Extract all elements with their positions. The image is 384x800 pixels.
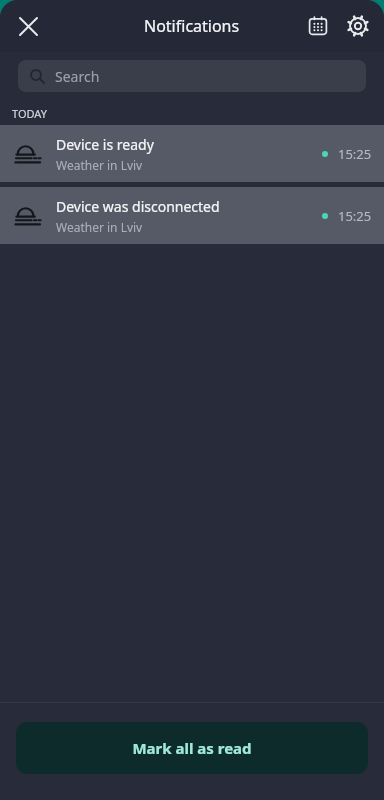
button[interactable]: Device is ready <box>0 125 384 182</box>
staticText: Weather in Lviv <box>56 219 143 235</box>
button[interactable]: Settings <box>338 6 378 46</box>
button[interactable]: Search <box>18 60 366 92</box>
staticText: TODAY <box>12 106 47 121</box>
staticText: Device is ready <box>56 135 154 154</box>
button[interactable]: Close <box>8 6 48 46</box>
staticText: 15:25 <box>338 207 372 225</box>
button[interactable]: Mark all as read <box>16 722 368 774</box>
staticText: Device was disconnected <box>56 197 220 216</box>
button[interactable]: Device was disconnected <box>0 187 384 244</box>
staticText: Search <box>55 67 100 86</box>
staticText: Mark all as read <box>132 738 252 758</box>
button[interactable]: Calendar <box>298 6 338 46</box>
staticText: Weather in Lviv <box>56 157 143 173</box>
staticText: 15:25 <box>338 145 372 163</box>
staticText: Notifications <box>144 15 240 37</box>
